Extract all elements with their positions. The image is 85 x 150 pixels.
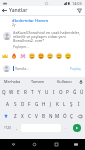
button[interactable]: Reaction bbox=[63, 52, 72, 60]
staticText: G bbox=[35, 101, 39, 107]
staticText: 14:03 bbox=[72, 1, 82, 6]
button[interactable]: Merhaba bbox=[0, 77, 25, 86]
button[interactable]: Back bbox=[9, 140, 18, 149]
staticText: O bbox=[59, 89, 63, 95]
button[interactable]: Backspace bbox=[75, 110, 85, 122]
button[interactable]: N bbox=[47, 110, 54, 122]
button[interactable]: Reaction bbox=[27, 52, 36, 60]
staticText: ?123 bbox=[4, 126, 11, 130]
staticText: İ bbox=[78, 101, 80, 107]
button[interactable]: Filter bbox=[75, 6, 84, 15]
button[interactable]: H bbox=[40, 98, 47, 110]
staticText: Y bbox=[38, 89, 41, 95]
button[interactable]: R bbox=[22, 86, 29, 98]
staticText: L bbox=[63, 101, 66, 107]
button[interactable]: , bbox=[13, 122, 20, 134]
button[interactable]: Ş bbox=[68, 98, 75, 110]
button[interactable]: Tamam bbox=[25, 77, 51, 86]
button[interactable]: W bbox=[8, 86, 15, 98]
button[interactable]: ?123 bbox=[1, 122, 13, 134]
button[interactable]: Recent apps bbox=[52, 140, 61, 149]
staticText: U bbox=[45, 89, 49, 95]
staticText: Z bbox=[14, 113, 17, 119]
staticText: Yanıtlar bbox=[9, 7, 28, 14]
button[interactable]: M bbox=[54, 110, 61, 122]
staticText: R bbox=[24, 89, 27, 95]
button[interactable]: Ö bbox=[61, 110, 68, 122]
staticText: X bbox=[21, 113, 24, 119]
staticText: , bbox=[16, 125, 18, 131]
staticText: Ş bbox=[70, 101, 73, 107]
staticText: H bbox=[42, 101, 46, 107]
staticText: I bbox=[53, 89, 55, 95]
button[interactable]: Reaction bbox=[0, 52, 9, 60]
button[interactable]: Shift bbox=[0, 110, 11, 122]
button[interactable]: I bbox=[50, 86, 57, 98]
staticText: Q bbox=[2, 89, 6, 95]
button[interactable]: Y bbox=[36, 86, 43, 98]
button[interactable]: L bbox=[61, 98, 68, 110]
button[interactable]: U bbox=[43, 86, 50, 98]
button[interactable]: K bbox=[54, 98, 61, 110]
staticText: Kullanıcı bbox=[57, 79, 72, 84]
staticText: C bbox=[28, 113, 31, 119]
button[interactable]: Reaction bbox=[18, 52, 27, 60]
staticText: T bbox=[31, 89, 34, 95]
staticText: J bbox=[50, 101, 52, 107]
staticText: A bbox=[6, 101, 9, 107]
staticText: P bbox=[66, 89, 69, 95]
button[interactable]: Z bbox=[11, 110, 19, 122]
button[interactable]: Keyboard bbox=[71, 140, 80, 149]
button[interactable]: O bbox=[57, 86, 64, 98]
staticText: B bbox=[42, 113, 45, 119]
button[interactable]: Q bbox=[0, 86, 8, 98]
button[interactable]: P bbox=[64, 86, 71, 98]
button[interactable]: J bbox=[47, 98, 54, 110]
staticText: #aKuzeUSonuhool en uzak haberdeler, etki… bbox=[13, 30, 83, 43]
button[interactable]: Reaction bbox=[54, 52, 63, 60]
staticText: Ç bbox=[70, 113, 73, 119]
button[interactable]: Voice input bbox=[77, 77, 85, 86]
button[interactable]: İ bbox=[75, 98, 82, 110]
staticText: Ğ bbox=[73, 89, 77, 95]
button[interactable]: Kullanıcı bbox=[51, 77, 77, 86]
staticText: M bbox=[55, 113, 60, 119]
staticText: Tamam bbox=[31, 79, 45, 84]
button[interactable]: . bbox=[62, 122, 69, 134]
staticText: Yanıtla... bbox=[15, 66, 30, 71]
button[interactable]: #kıdemdar Hanım bbox=[12, 18, 49, 24]
button[interactable]: F bbox=[26, 98, 33, 110]
staticText: Paylaşım... bbox=[13, 45, 29, 49]
button[interactable]: T bbox=[29, 86, 36, 98]
button[interactable]: Ğ bbox=[71, 86, 78, 98]
button[interactable]: D bbox=[19, 98, 26, 110]
button[interactable]: Home bbox=[30, 140, 39, 149]
button[interactable]: Back bbox=[0, 6, 9, 15]
button[interactable]: B bbox=[40, 110, 47, 122]
staticText: Paylaş bbox=[70, 66, 81, 71]
button[interactable]: G bbox=[33, 98, 40, 110]
staticText: S bbox=[14, 101, 17, 107]
button[interactable]: V bbox=[33, 110, 40, 122]
button[interactable]: E bbox=[15, 86, 22, 98]
staticText: . bbox=[65, 125, 67, 131]
button[interactable]: Ü bbox=[78, 86, 85, 98]
button[interactable]: Paylaş bbox=[69, 64, 82, 73]
staticText: #kıdemdar Hanım bbox=[12, 18, 49, 24]
button[interactable]: Send bbox=[73, 124, 81, 132]
staticText: N bbox=[49, 113, 53, 119]
button[interactable]: Ç bbox=[68, 110, 75, 122]
button[interactable]: S bbox=[11, 98, 19, 110]
button[interactable]: #aKuzeUSonuhool en uzak haberdeler, etki… bbox=[0, 30, 85, 50]
button[interactable]: Reaction bbox=[36, 52, 45, 60]
staticText: Ü bbox=[80, 89, 84, 95]
staticText: F bbox=[28, 101, 31, 107]
button[interactable]: Reaction bbox=[45, 52, 54, 60]
button[interactable]: C bbox=[26, 110, 33, 122]
button[interactable]: X bbox=[19, 110, 26, 122]
button[interactable]: A bbox=[3, 98, 11, 110]
button[interactable]: Reaction bbox=[9, 52, 18, 60]
staticText: 2y bbox=[12, 23, 16, 27]
staticText: Ö bbox=[63, 113, 67, 119]
